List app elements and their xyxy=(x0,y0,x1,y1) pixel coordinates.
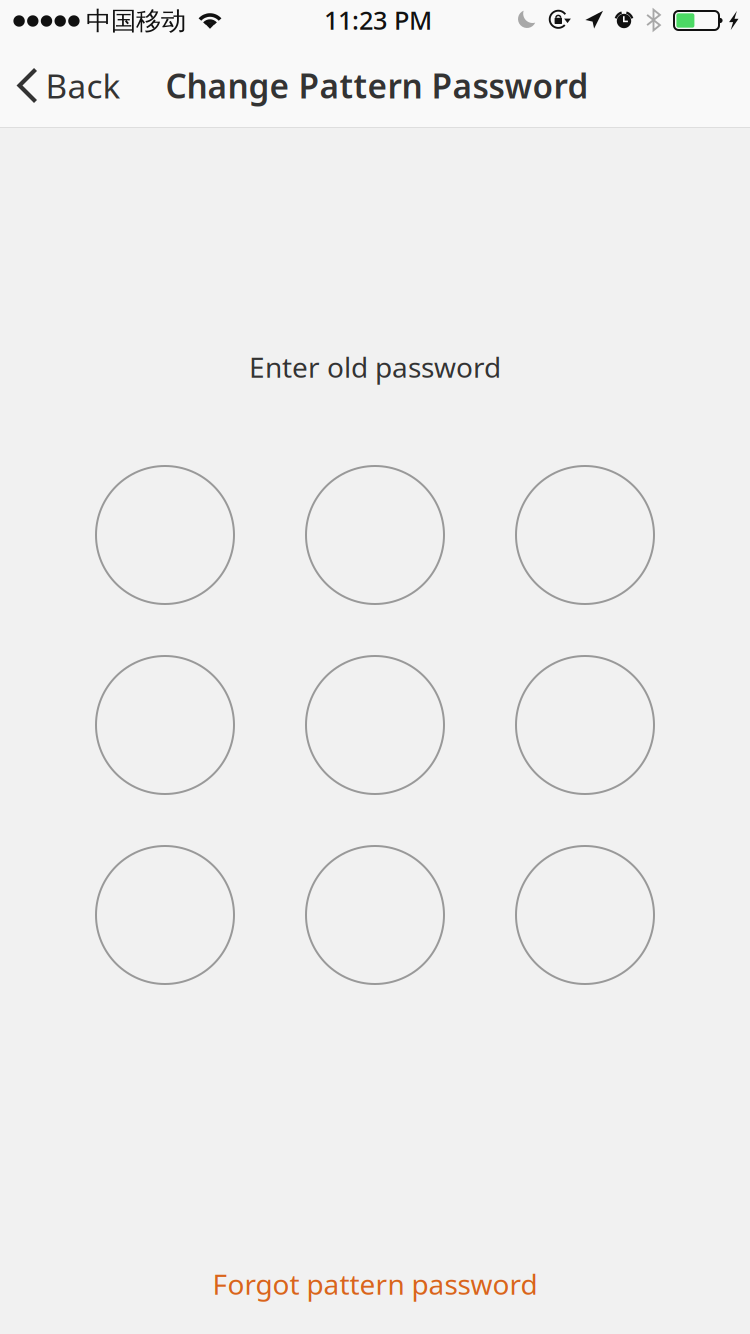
button[interactable]: Pattern dot 2 xyxy=(306,466,444,604)
staticText: Forgot pattern password xyxy=(212,1265,537,1303)
button[interactable]: Pattern dot 8 xyxy=(306,846,444,984)
staticText: 11:23 PM xyxy=(324,3,432,37)
staticText: Back xyxy=(45,63,120,108)
button[interactable]: Pattern dot 9 xyxy=(516,846,654,984)
button[interactable]: Pattern dot 1 xyxy=(96,466,234,604)
staticText: Enter old password xyxy=(249,348,501,386)
button[interactable]: Pattern dot 7 xyxy=(96,846,234,984)
button[interactable]: Pattern dot 4 xyxy=(96,656,234,794)
staticText: Change Pattern Password xyxy=(165,63,588,108)
button[interactable]: Pattern dot 6 xyxy=(516,656,654,794)
button[interactable]: Forgot pattern password xyxy=(140,1248,610,1320)
staticText: 中国移动 xyxy=(86,5,186,36)
button[interactable]: Pattern dot 5 xyxy=(306,656,444,794)
button[interactable]: Pattern dot 3 xyxy=(516,466,654,604)
button[interactable]: Back xyxy=(1,49,134,121)
